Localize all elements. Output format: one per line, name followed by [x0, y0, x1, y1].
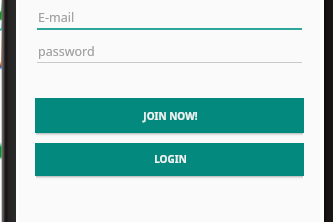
- button[interactable]: E-mail: [37, 8, 302, 30]
- staticText: JOIN NOW!: [143, 109, 198, 123]
- button[interactable]: LOGIN: [35, 143, 304, 176]
- staticText: LOGIN: [154, 152, 187, 166]
- button[interactable]: JOIN NOW!: [35, 98, 304, 133]
- button[interactable]: password: [37, 42, 302, 63]
- staticText: E-mail: [38, 9, 75, 26]
- other: Device frame: [324, 0, 333, 222]
- staticText: password: [38, 43, 95, 60]
